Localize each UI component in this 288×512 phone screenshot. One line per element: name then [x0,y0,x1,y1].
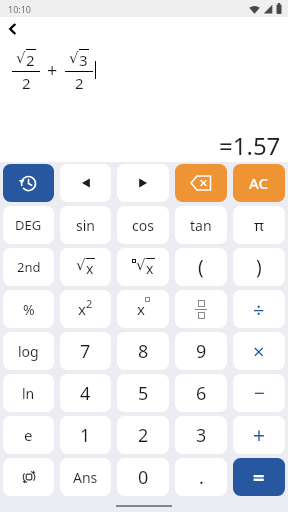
staticText: 10:10 [8,3,32,15]
staticText: =1.57 [219,129,281,162]
button[interactable]: 4 [60,374,111,412]
button[interactable] [117,164,169,202]
staticText: 2 [138,423,149,448]
button[interactable]: 8 [117,332,169,370]
staticText: 2 [26,50,35,70]
staticText: 9 [196,339,207,364]
button[interactable]: = [233,458,285,496]
button[interactable]: 9 [175,332,227,370]
staticText: Ans [73,468,98,487]
staticText: √ [16,49,26,66]
button[interactable]: − [233,374,285,412]
staticText: . [199,465,204,490]
button[interactable]: ) [233,248,285,286]
button[interactable]: 2nd [3,248,54,286]
staticText: 7 [80,339,91,364]
button[interactable]: % [3,290,54,328]
button[interactable]: x [117,290,169,328]
staticText: x [137,299,145,319]
button[interactable]: tan [175,206,227,244]
staticText: 6 [196,381,207,406]
button[interactable]: 0 [117,458,169,496]
staticText: √ [76,256,86,273]
button[interactable]: log [3,332,54,370]
button[interactable]: ( [175,248,227,286]
staticText: log [18,342,39,361]
button[interactable]: e [3,416,54,454]
staticText: × [253,338,265,365]
button[interactable]: 7 [60,332,111,370]
staticText: tan [190,216,212,235]
button[interactable]: 6 [175,374,227,412]
staticText: % [23,300,35,319]
button[interactable]: √ [60,248,111,286]
staticText: 4 [80,381,91,406]
button[interactable] [175,164,227,202]
staticText: 2nd [17,258,41,276]
button[interactable]: ÷ [233,290,285,328]
staticText: DEG [15,216,42,234]
staticText: 3 [79,50,88,70]
staticText: √ [136,256,146,273]
staticText: 2 [75,73,84,91]
button[interactable]: + [233,416,285,454]
staticText: x [78,299,86,319]
button[interactable]: AC [233,164,285,202]
button[interactable]: sin [60,206,111,244]
staticText: 2 [86,296,93,311]
staticText: π [254,215,264,235]
button[interactable]: √ [117,248,169,286]
button[interactable] [0,17,40,41]
staticText: √ [69,49,79,66]
button[interactable]: × [233,332,285,370]
button[interactable]: ln [3,374,54,412]
button[interactable]: DEG [3,206,54,244]
staticText: x [86,259,94,278]
staticText: ÷ [253,296,265,323]
button[interactable] [3,458,54,496]
button[interactable]: π [233,206,285,244]
button[interactable]: . [175,458,227,496]
staticText: cos [132,216,154,235]
staticText: 8 [138,339,149,364]
staticText: 2 [22,73,31,91]
staticText: ln [22,384,35,403]
staticText: 1 [80,423,91,448]
staticText: sin [76,216,95,235]
staticText: 3 [196,423,207,448]
staticText: AC [249,173,269,193]
staticText: x [146,259,154,278]
staticText: ) [256,254,262,280]
staticText: − [254,380,265,406]
button[interactable] [175,290,227,328]
staticText: e [24,425,33,445]
staticText: 0 [138,465,149,490]
button[interactable] [3,164,54,202]
button[interactable]: 5 [117,374,169,412]
button[interactable]: 1 [60,416,111,454]
staticText: + [47,58,58,83]
staticText: = [253,464,265,491]
button[interactable] [60,164,111,202]
staticText: + [253,421,266,450]
staticText: ( [198,254,204,280]
button[interactable]: Ans [60,458,111,496]
staticText: 5 [138,381,149,406]
button[interactable]: 2 [117,416,169,454]
button[interactable]: x [60,290,111,328]
button[interactable]: cos [117,206,169,244]
button[interactable]: 3 [175,416,227,454]
